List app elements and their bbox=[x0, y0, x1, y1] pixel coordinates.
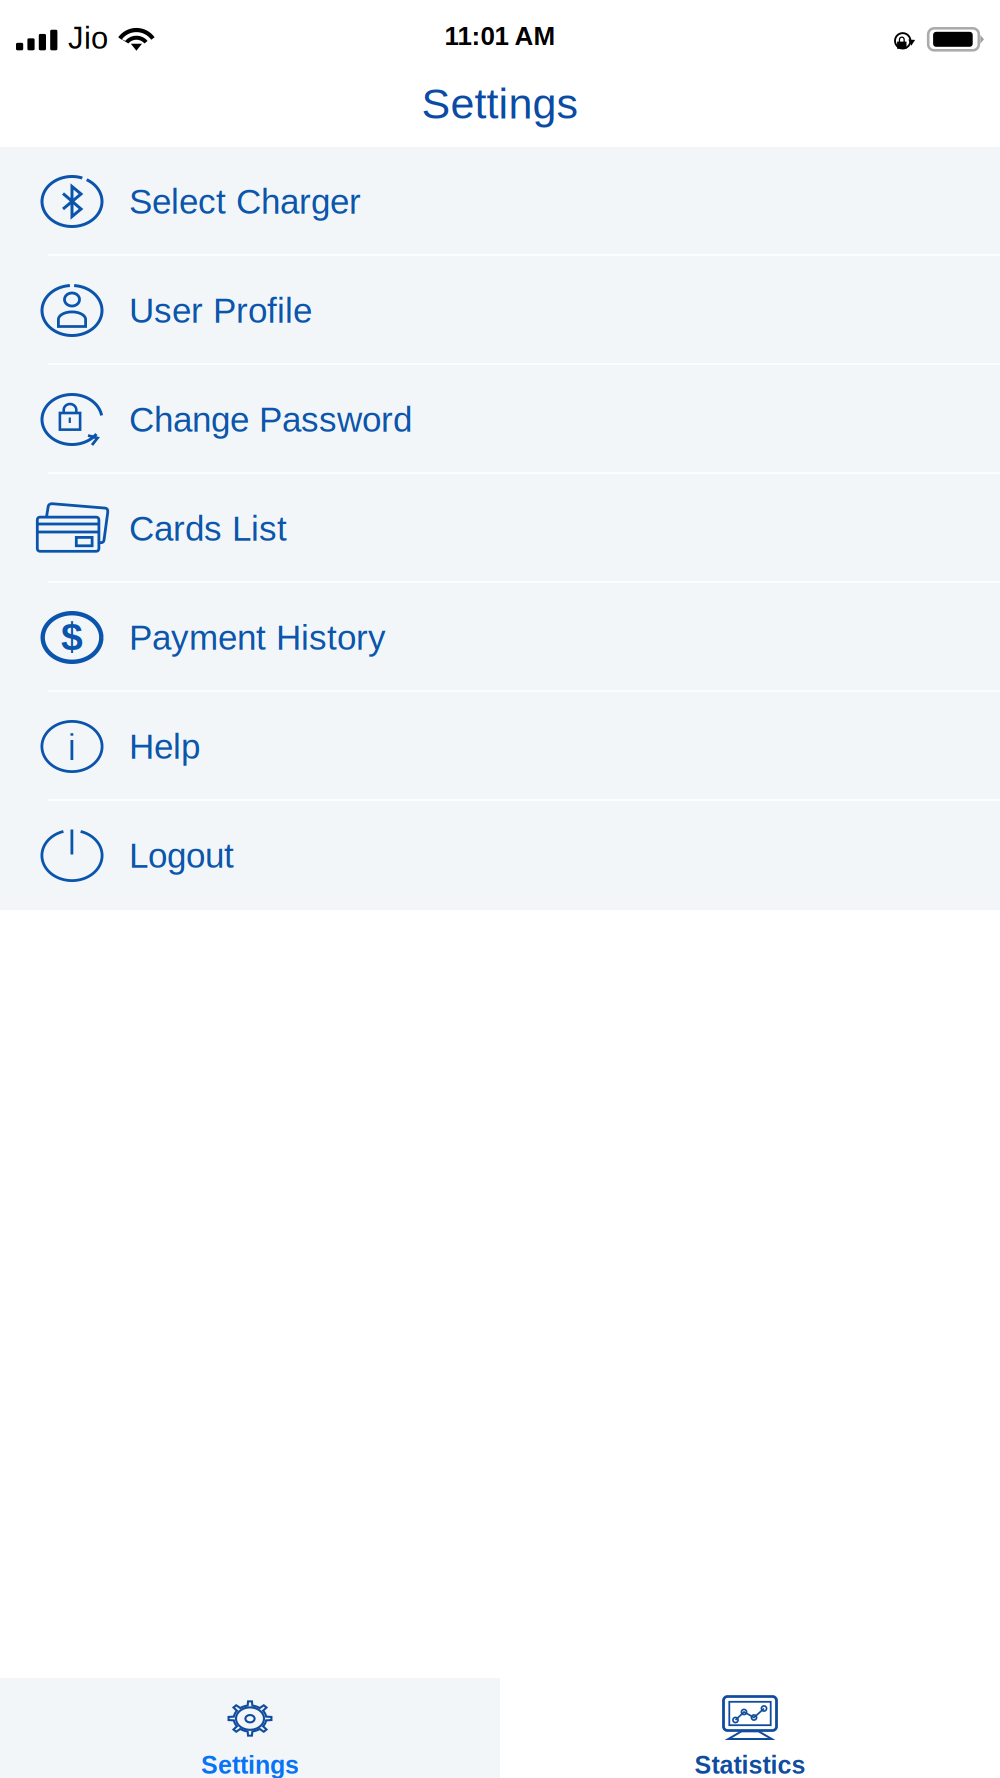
button[interactable]: User Profile bbox=[0, 256, 1000, 365]
staticText: Settings bbox=[201, 1751, 299, 1778]
staticText: Logout bbox=[129, 836, 234, 875]
button[interactable]: $ bbox=[0, 583, 1000, 692]
staticText: Cards List bbox=[129, 509, 287, 548]
button[interactable]: Change Password bbox=[0, 365, 1000, 474]
staticText: Statistics bbox=[694, 1751, 805, 1778]
staticText: Settings bbox=[421, 79, 578, 127]
staticText: Jio bbox=[68, 21, 108, 55]
button[interactable]: Cards List bbox=[0, 474, 1000, 583]
button[interactable]: Help bbox=[0, 692, 1000, 801]
staticText: 11:01 AM bbox=[444, 21, 555, 50]
staticText: User Profile bbox=[129, 291, 312, 330]
button[interactable]: Settings bbox=[0, 74, 1000, 147]
staticText: $ bbox=[61, 615, 83, 658]
button[interactable]: Settings bbox=[0, 1678, 500, 1778]
button[interactable]: Statistics bbox=[500, 1678, 1000, 1778]
staticText: Payment History bbox=[129, 618, 386, 657]
staticText: Change Password bbox=[129, 400, 412, 439]
button[interactable]: Logout bbox=[0, 801, 1000, 910]
staticText: Help bbox=[129, 727, 200, 766]
button[interactable]: Select Charger bbox=[0, 147, 1000, 256]
staticText: Select Charger bbox=[129, 182, 361, 221]
